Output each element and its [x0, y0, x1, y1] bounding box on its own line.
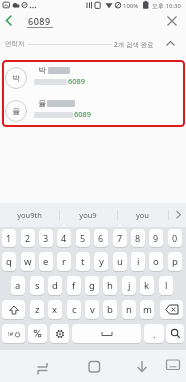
staticText: 7	[117, 232, 123, 244]
button[interactable]: y	[94, 252, 108, 271]
staticText: h	[107, 279, 113, 292]
button[interactable]	[50, 324, 69, 343]
button[interactable]: d	[48, 276, 62, 295]
button[interactable]: 5	[76, 229, 90, 247]
button[interactable]: u	[113, 252, 127, 271]
staticText: f	[72, 279, 76, 292]
button[interactable]: s	[30, 276, 44, 295]
button[interactable]	[31, 356, 53, 378]
button[interactable]: i	[131, 252, 145, 271]
staticText: k	[144, 279, 150, 292]
staticText: i	[137, 255, 140, 268]
button[interactable]: k	[140, 276, 154, 295]
staticText: u	[117, 255, 123, 268]
button[interactable]: g	[85, 276, 99, 295]
staticText: 연락처	[5, 40, 25, 48]
button[interactable]	[162, 354, 184, 376]
button[interactable]: you	[117, 203, 168, 227]
button[interactable]: v	[85, 300, 99, 319]
button[interactable]: 9	[149, 229, 163, 247]
button[interactable]: l	[159, 276, 173, 295]
button[interactable]	[28, 324, 47, 343]
staticText: 100%	[123, 2, 139, 10]
button[interactable]: a	[11, 276, 25, 295]
staticText: 오후 10:30	[152, 2, 181, 10]
staticText: .	[153, 328, 156, 340]
staticText: t	[81, 255, 85, 268]
button[interactable]: x	[48, 300, 62, 319]
staticText: you9th	[17, 210, 42, 220]
staticText: r	[62, 255, 66, 268]
button[interactable]: b	[103, 300, 117, 319]
staticText: p	[172, 255, 178, 268]
staticText: j	[128, 279, 131, 292]
staticText: 6089	[28, 15, 51, 27]
button[interactable]: 7	[113, 229, 127, 247]
button[interactable]: 0	[168, 229, 182, 247]
button[interactable]	[72, 324, 141, 343]
button[interactable]: 율	[2, 94, 183, 127]
staticText: d	[52, 279, 58, 292]
button[interactable]: t	[76, 252, 90, 271]
button[interactable]	[166, 324, 184, 343]
button[interactable]	[160, 300, 183, 319]
button[interactable]: c	[67, 300, 81, 319]
staticText: 2개 검색 완료	[114, 40, 154, 49]
staticText: 5	[80, 232, 86, 244]
staticText: c	[72, 303, 77, 316]
button[interactable]: h	[103, 276, 117, 295]
staticText: x	[52, 303, 58, 316]
button[interactable]: q	[2, 252, 16, 271]
button[interactable]: you9th	[0, 203, 59, 227]
staticText: 박	[38, 65, 46, 75]
staticText: 8	[135, 232, 141, 244]
button[interactable]: 2	[21, 229, 35, 247]
staticText: a	[15, 279, 21, 292]
button[interactable]: e	[39, 252, 53, 271]
staticText: 3	[43, 232, 49, 244]
staticText: you	[136, 210, 149, 220]
staticText: 1	[6, 232, 12, 244]
button[interactable]	[131, 356, 153, 378]
staticText: l	[165, 279, 168, 292]
button[interactable]: 3	[39, 229, 53, 247]
button[interactable]: .	[144, 324, 164, 343]
button[interactable]: m	[140, 300, 154, 319]
button[interactable]: 4	[57, 229, 71, 247]
button[interactable]: 8	[131, 229, 145, 247]
button[interactable]: p	[168, 252, 182, 271]
staticText: v	[90, 303, 95, 316]
staticText: 6	[98, 232, 104, 244]
staticText: e	[43, 255, 49, 268]
staticText: 6089	[68, 76, 86, 86]
button[interactable]	[0, 10, 22, 32]
button[interactable]	[162, 36, 180, 50]
button[interactable]: f	[67, 276, 81, 295]
button[interactable]	[161, 11, 183, 31]
button[interactable]: 1	[2, 229, 16, 247]
button[interactable]	[83, 356, 105, 378]
button[interactable]: r	[57, 252, 71, 271]
button[interactable]: w	[21, 252, 35, 271]
staticText: 4	[61, 232, 67, 244]
staticText: y	[99, 255, 104, 268]
staticText: z	[35, 303, 40, 316]
button[interactable]: z	[30, 300, 44, 319]
staticText: o	[153, 255, 159, 268]
button[interactable]: !#	[2, 324, 25, 343]
button[interactable]: you9	[59, 203, 117, 227]
button[interactable]: o	[149, 252, 163, 271]
staticText: 6089	[74, 109, 92, 119]
button[interactable]: j	[122, 276, 136, 295]
staticText: b	[107, 303, 113, 316]
button[interactable]	[2, 300, 25, 319]
button[interactable]: 6	[94, 229, 108, 247]
button[interactable]: 박	[2, 61, 183, 94]
button[interactable]	[170, 203, 186, 227]
staticText: w	[24, 255, 32, 268]
staticText: 9	[153, 232, 159, 244]
staticText: 2	[25, 232, 31, 244]
staticText: m	[143, 303, 152, 316]
button[interactable]: n	[122, 300, 136, 319]
staticText: s	[35, 279, 40, 292]
